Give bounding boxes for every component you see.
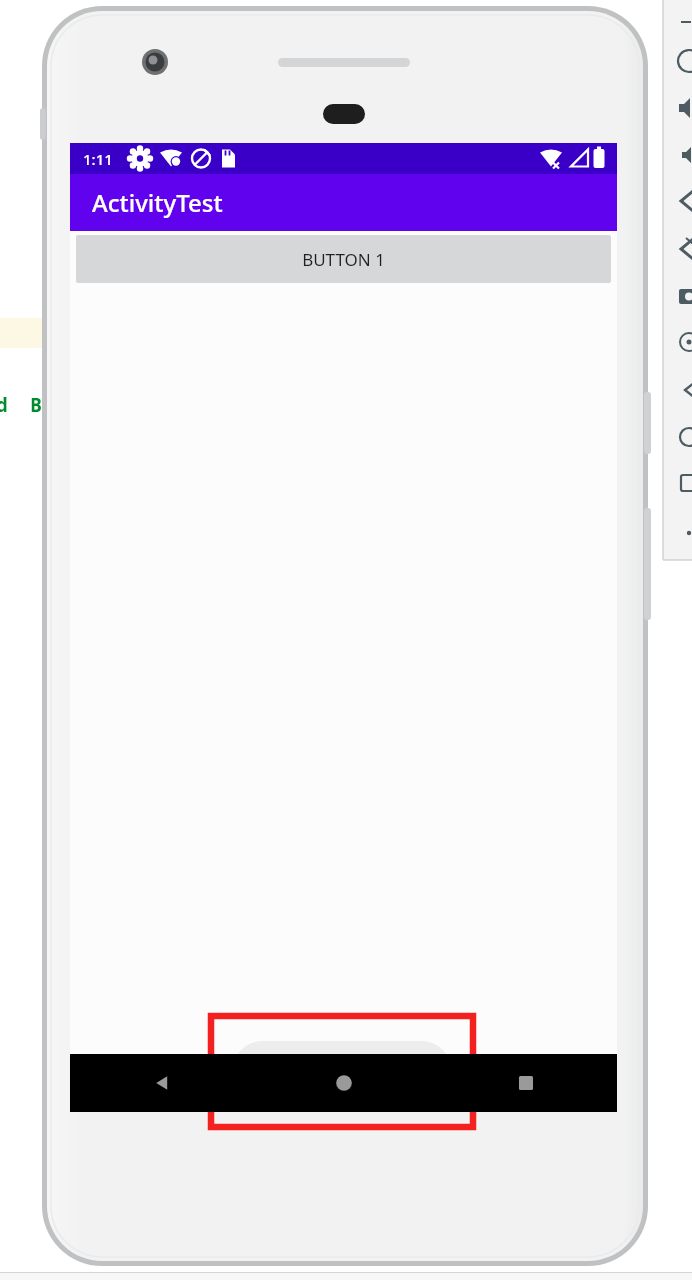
button[interactable]: Recent apps bbox=[435, 1054, 617, 1112]
staticText: 1:11 bbox=[83, 149, 113, 169]
button[interactable]: Back bbox=[70, 1054, 253, 1112]
staticText: ActivityTest bbox=[92, 186, 223, 219]
staticText: You clicked Button 1 bbox=[261, 1061, 423, 1084]
staticText: d B bbox=[0, 392, 42, 418]
button[interactable]: BUTTON 1 bbox=[76, 235, 611, 283]
button[interactable]: Home bbox=[253, 1054, 435, 1112]
staticText: BUTTON 1 bbox=[302, 248, 385, 271]
